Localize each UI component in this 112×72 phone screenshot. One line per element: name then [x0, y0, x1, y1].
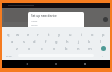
- button[interactable]: Recents: [81, 60, 89, 68]
- button[interactable]: ?123: [4, 52, 14, 59]
- button[interactable]: Back: [23, 60, 31, 68]
- button[interactable]: g: [51, 38, 62, 45]
- button[interactable]: z: [10, 45, 23, 52]
- button[interactable]: a: [6, 38, 18, 45]
- staticText: u: [69, 32, 72, 37]
- staticText: z: [16, 46, 18, 51]
- button[interactable]: o: [87, 31, 98, 38]
- button[interactable]: u: [65, 31, 76, 38]
- staticText: y: [58, 32, 61, 37]
- staticText: m: [88, 46, 92, 51]
- staticText: n: [77, 46, 80, 51]
- staticText: p: [102, 32, 105, 37]
- staticText: device: [31, 24, 38, 27]
- staticText: w: [16, 32, 20, 37]
- staticText: g: [55, 39, 58, 44]
- staticText: v: [53, 46, 56, 51]
- staticText: r: [37, 32, 39, 37]
- staticText: i: [81, 32, 83, 37]
- button[interactable]: Add: [103, 17, 108, 22]
- staticText: q: [7, 32, 10, 37]
- staticText: s: [23, 39, 25, 44]
- staticText: ?123: [6, 54, 12, 57]
- button[interactable]: t: [43, 31, 54, 38]
- staticText: Set up new device: [31, 14, 57, 18]
- staticText: d: [33, 39, 36, 44]
- button[interactable]: p: [98, 31, 109, 38]
- button[interactable]: b: [60, 45, 72, 52]
- staticText: h: [66, 39, 69, 44]
- button[interactable]: x: [23, 45, 36, 52]
- staticText: .: [102, 53, 104, 58]
- button[interactable]: k: [84, 38, 95, 45]
- button[interactable]: r: [33, 31, 43, 38]
- button[interactable]: m: [84, 45, 96, 52]
- staticText: k: [88, 39, 91, 44]
- staticText: Name: [31, 20, 38, 23]
- button[interactable]: i: [76, 31, 87, 38]
- staticText: b: [65, 46, 68, 51]
- button[interactable]: q: [3, 31, 13, 38]
- staticText: a: [11, 39, 14, 44]
- button[interactable]: n: [72, 45, 84, 52]
- button[interactable]: s: [18, 38, 29, 45]
- button[interactable]: d: [29, 38, 40, 45]
- staticText: c: [41, 46, 43, 51]
- button[interactable]: l: [95, 38, 106, 45]
- staticText: j: [78, 39, 80, 44]
- staticText: o: [91, 32, 94, 37]
- button[interactable]: e: [23, 31, 33, 38]
- button[interactable]: c: [36, 45, 48, 52]
- button[interactable]: f: [40, 38, 51, 45]
- staticText: x: [28, 46, 31, 51]
- button[interactable]: Enter: [96, 45, 110, 52]
- staticText: t: [48, 32, 50, 37]
- staticText: f: [45, 39, 47, 44]
- button[interactable]: j: [73, 38, 84, 45]
- staticText: l: [100, 39, 102, 44]
- button[interactable]: v: [48, 45, 60, 52]
- button[interactable]: Home: [52, 60, 60, 68]
- button[interactable]: w: [13, 31, 23, 38]
- button[interactable]: y: [54, 31, 65, 38]
- button[interactable]: h: [62, 38, 73, 45]
- staticText: e: [27, 32, 30, 37]
